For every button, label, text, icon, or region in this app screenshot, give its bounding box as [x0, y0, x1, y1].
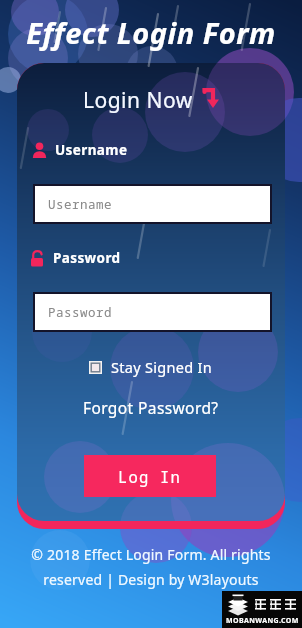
button[interactable]: Stay Signed In: [89, 357, 213, 377]
button[interactable]: MOBANWANG.COM: [222, 591, 302, 628]
staticText: Username: [48, 196, 113, 213]
staticText: © 2018 Effect Login Form. All rights: [0, 545, 302, 564]
staticText: MOBANWANG.COM: [226, 616, 299, 626]
staticText: Effect Login Form: [0, 13, 302, 52]
button[interactable]: Password: [35, 294, 270, 330]
staticText: Stay Signed In: [111, 357, 213, 377]
button[interactable]: Log In: [84, 455, 216, 497]
button[interactable]: Username: [35, 186, 270, 222]
staticText: Log In: [118, 466, 182, 487]
staticText: reserved | Design by W3layouts: [0, 570, 302, 589]
staticText: Password: [53, 249, 121, 267]
staticText: Password: [48, 304, 113, 321]
staticText: Login Now: [83, 86, 193, 115]
staticText: Username: [55, 141, 128, 159]
button[interactable]: Forgot Password?: [83, 397, 219, 418]
